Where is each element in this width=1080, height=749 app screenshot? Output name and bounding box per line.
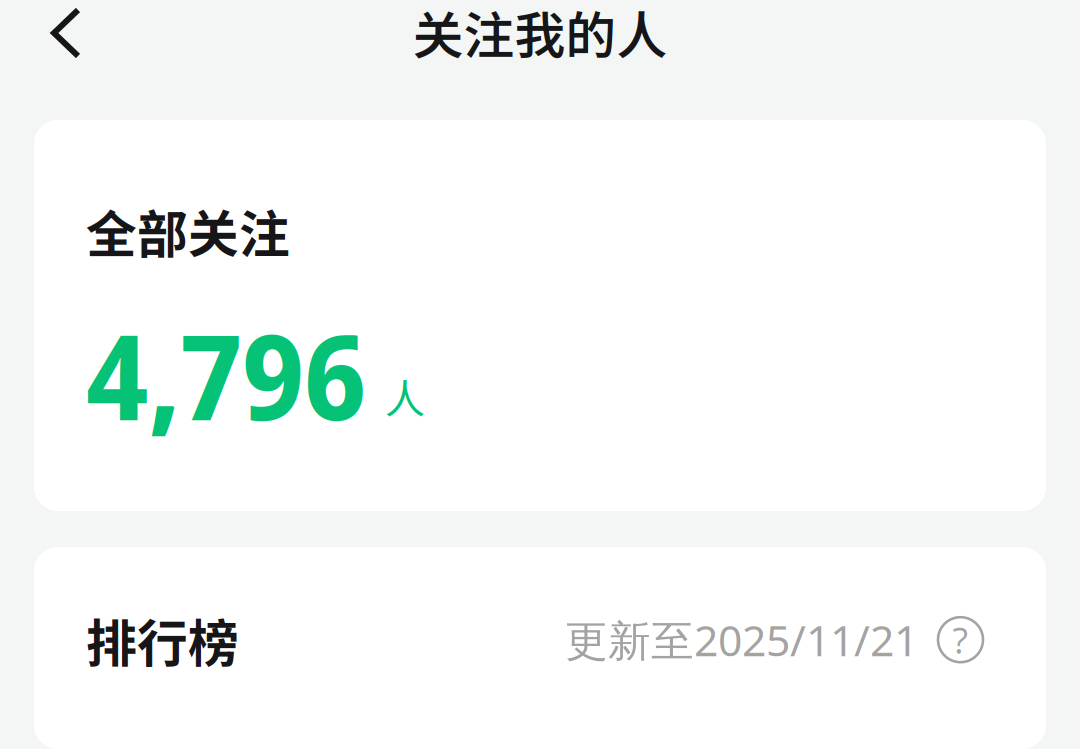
staticText: 排行榜 (86, 603, 239, 676)
staticText: 4,796 (86, 293, 366, 455)
staticText: 全部关注 (86, 194, 290, 267)
staticText: 更新至2025/11/21 (565, 611, 918, 668)
staticText: 关注我的人 (412, 0, 667, 69)
button[interactable]: Back (0, 0, 108, 68)
staticText: ? (952, 615, 968, 664)
staticText: 人 (385, 367, 425, 425)
button[interactable]: 更新至2025/11/21 (565, 611, 983, 668)
